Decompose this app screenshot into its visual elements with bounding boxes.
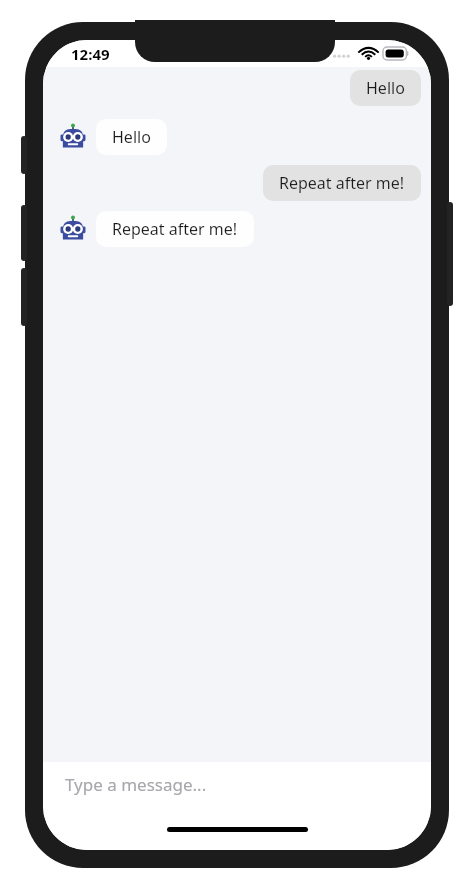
staticText: Repeat after me! <box>279 172 405 194</box>
staticText: 12:49 <box>71 44 110 64</box>
button[interactable]: Repeat after me! <box>96 211 254 247</box>
other: Bot avatar <box>60 124 86 150</box>
staticText: Hello <box>366 77 405 99</box>
staticText: Type a message... <box>65 773 207 796</box>
button[interactable]: Type a message... <box>43 762 431 825</box>
staticText: Repeat after me! <box>112 218 238 240</box>
button[interactable]: Hello <box>96 119 167 155</box>
other: Bot avatar <box>60 216 86 242</box>
button[interactable]: Hello <box>350 70 421 106</box>
button[interactable]: Repeat after me! <box>263 165 421 201</box>
staticText: Hello <box>112 126 151 148</box>
